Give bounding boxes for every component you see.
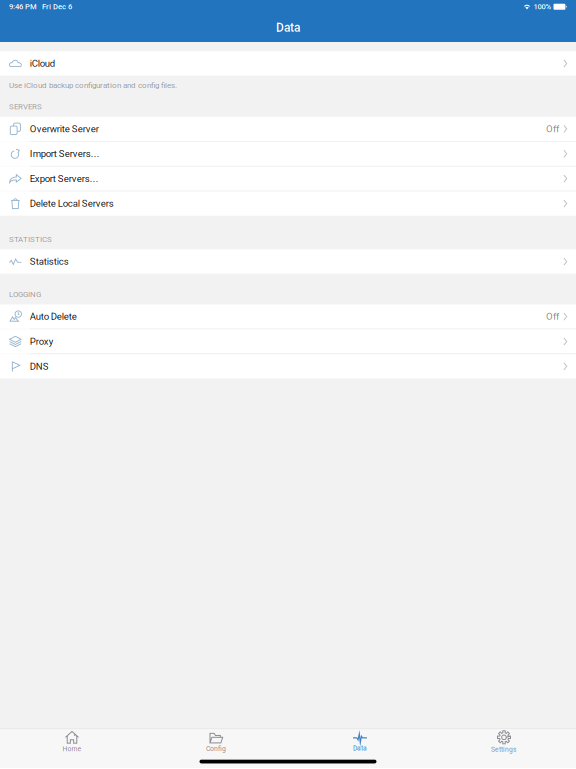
staticText: Data: [353, 744, 367, 752]
button[interactable]: Export Servers...: [0, 166, 576, 191]
staticText: 9:46 PM: [9, 2, 37, 11]
button[interactable]: Data: [288, 729, 432, 755]
button[interactable]: DNS: [0, 354, 576, 378]
button[interactable]: Auto Delete: [0, 304, 576, 329]
staticText: Data: [276, 21, 300, 35]
button[interactable]: Import Servers...: [0, 142, 576, 166]
button[interactable]: Statistics: [0, 249, 576, 274]
button[interactable]: Home: [0, 729, 144, 755]
button[interactable]: Proxy: [0, 329, 576, 354]
staticText: Export Servers...: [30, 173, 99, 184]
button[interactable]: Delete Local Servers: [0, 191, 576, 216]
staticText: Statistics: [30, 256, 69, 267]
staticText: DNS: [30, 361, 49, 372]
staticText: Delete Local Servers: [30, 198, 114, 209]
staticText: STATISTICS: [9, 235, 52, 244]
staticText: iCloud: [30, 58, 55, 69]
button[interactable]: Config: [144, 729, 288, 755]
staticText: Import Servers...: [30, 148, 100, 159]
staticText: 100%: [533, 2, 551, 11]
staticText: Use iCloud backup configuration and conf…: [9, 81, 177, 90]
button[interactable]: Overwrite Server: [0, 117, 576, 141]
staticText: Proxy: [30, 336, 54, 347]
staticText: Fri Dec 6: [42, 2, 72, 11]
staticText: Overwrite Server: [30, 123, 99, 134]
staticText: SERVERS: [9, 102, 42, 111]
staticText: Off: [546, 311, 559, 322]
staticText: LOGGING: [9, 290, 41, 299]
button[interactable]: Settings: [432, 729, 576, 755]
staticText: Auto Delete: [30, 311, 77, 322]
staticText: Settings: [491, 745, 517, 753]
staticText: Home: [62, 745, 81, 753]
staticText: Off: [546, 123, 559, 134]
button[interactable]: iCloud: [0, 51, 576, 76]
staticText: Config: [206, 745, 226, 753]
